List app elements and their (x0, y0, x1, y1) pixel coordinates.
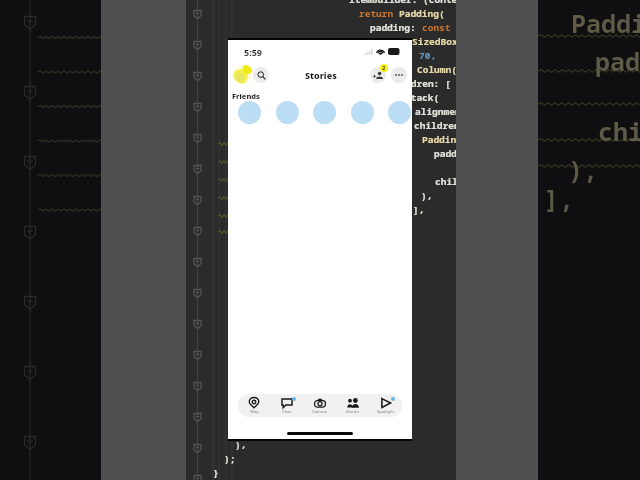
staticText: ], (413, 203, 425, 216)
staticText: ), (421, 189, 433, 202)
staticText: chi (598, 114, 640, 148)
staticText: Stories (346, 409, 359, 414)
staticText: const (377, 35, 412, 48)
staticText: Map (250, 409, 259, 414)
staticText: Friends (232, 91, 260, 101)
staticText: padding (434, 147, 474, 160)
staticText: Stories (305, 69, 337, 81)
staticText: Paddi (571, 6, 640, 40)
staticText: ), (235, 438, 247, 451)
staticText: children: (414, 119, 466, 132)
staticText: Stack( (405, 91, 440, 104)
staticText: padding: (370, 21, 422, 34)
staticText: 70, (419, 49, 437, 62)
staticText: ], (544, 181, 575, 215)
button[interactable]: Spotlight (369, 394, 402, 417)
button[interactable]: Chat (270, 394, 303, 417)
staticText: const (422, 21, 457, 34)
button[interactable]: Story 1 (238, 101, 261, 124)
staticText: Padding( (422, 133, 468, 146)
staticText: } (213, 466, 219, 479)
button[interactable]: More options (391, 67, 407, 83)
button[interactable]: Map (238, 394, 270, 417)
staticText: Camera (312, 409, 327, 414)
button[interactable]: Camera (303, 394, 336, 417)
staticText: 5:59 (244, 46, 262, 58)
button[interactable]: Search (253, 67, 269, 83)
button[interactable]: Add friends (370, 67, 386, 83)
staticText: children: [ (388, 77, 451, 90)
staticText: itemBuilder: (conte (349, 0, 458, 6)
button[interactable]: Stories (336, 394, 369, 417)
staticText: return (359, 7, 399, 20)
staticText: Chat (282, 409, 291, 414)
staticText: alignment: (415, 105, 473, 118)
button[interactable]: Story 5 (388, 101, 411, 124)
staticText: SizedBox( (412, 35, 464, 48)
staticText: ht: (396, 49, 419, 62)
staticText: 2 (382, 64, 386, 72)
button[interactable]: Story 3 (313, 101, 336, 124)
staticText: child (435, 175, 464, 188)
button[interactable]: Profile (233, 64, 253, 84)
staticText: Spotlight (377, 409, 394, 414)
button[interactable]: Story 2 (276, 101, 299, 124)
button[interactable]: Story 4 (351, 101, 374, 124)
staticText: ), (568, 152, 599, 186)
staticText: ); (224, 452, 236, 465)
staticText: Padding( (399, 7, 445, 20)
staticText: ld: (394, 63, 417, 76)
staticText: Column( (417, 63, 457, 76)
staticText: padd (595, 44, 640, 78)
